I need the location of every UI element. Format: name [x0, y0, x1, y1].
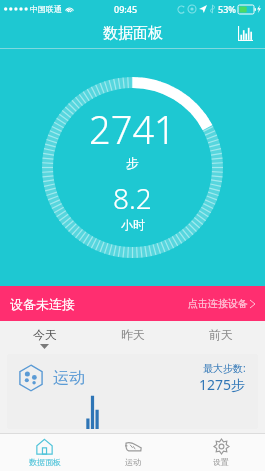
staticText: 2741 [89, 103, 176, 155]
staticText: 昨天 [121, 327, 145, 342]
staticText: 小时 [121, 217, 145, 232]
staticText: 运动 [53, 368, 85, 388]
staticText: 最大步数: [203, 361, 246, 375]
button[interactable]: Statistics [233, 21, 257, 45]
button[interactable]: 前天 [177, 321, 265, 354]
button[interactable]: 运动 [89, 434, 177, 471]
staticText: 步 [126, 155, 139, 171]
staticText: 09:45 [114, 3, 138, 15]
staticText: 1275步 [199, 375, 246, 394]
staticText: 今天 [33, 327, 57, 342]
staticText: 前天 [209, 327, 233, 342]
staticText: 设置 [213, 457, 229, 467]
staticText: 中国联通 [30, 4, 62, 14]
staticText: 53% [218, 3, 236, 15]
staticText: 数据面板 [103, 24, 163, 43]
staticText: 运动 [125, 457, 141, 467]
staticText: 设备未连接 [10, 296, 75, 312]
button[interactable]: 昨天 [89, 321, 177, 354]
button[interactable]: 设置 [177, 434, 265, 471]
staticText: 数据面板 [29, 457, 61, 467]
button[interactable]: 设备未连接 [0, 286, 265, 321]
button[interactable]: 今天 [0, 321, 89, 354]
staticText: 8.2 [113, 179, 152, 217]
staticText: 点击连接设备 [188, 297, 248, 310]
button[interactable]: 数据面板 [0, 434, 89, 471]
button[interactable]: 运动 [7, 354, 258, 429]
